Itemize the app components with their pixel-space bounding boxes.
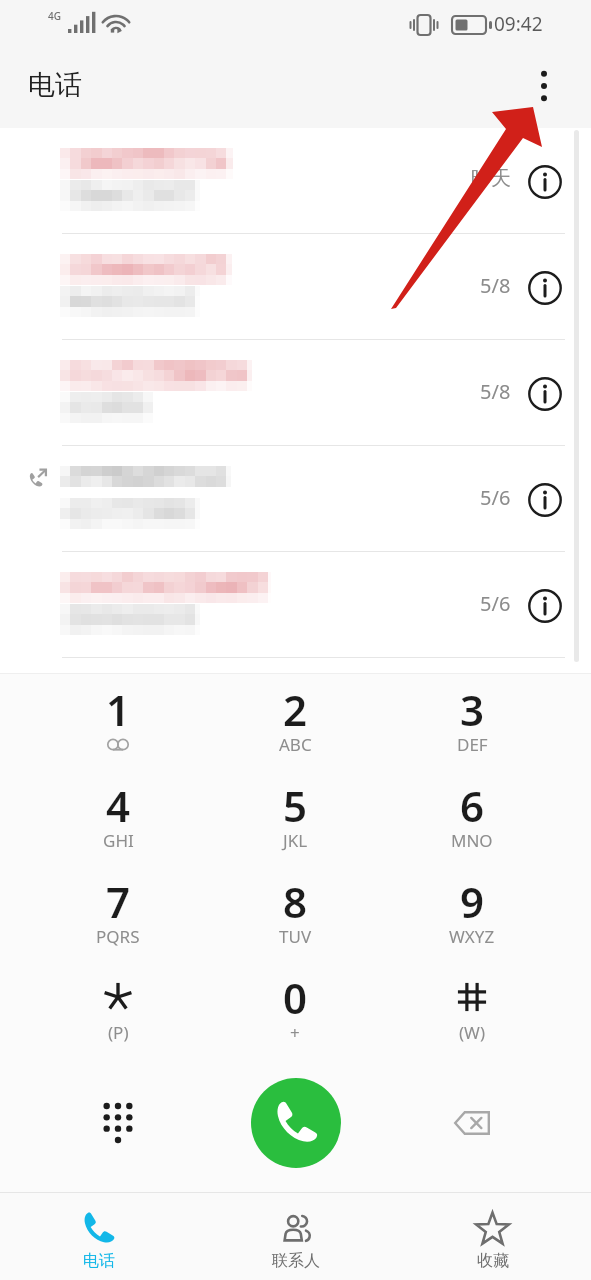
button[interactable]: 4 bbox=[30, 775, 206, 871]
button[interactable]: 7 bbox=[30, 871, 206, 967]
button[interactable]: Call details bbox=[527, 270, 563, 306]
button[interactable]: Call details bbox=[527, 588, 563, 624]
button[interactable]: 5 bbox=[207, 775, 383, 871]
button[interactable]: 8 bbox=[207, 871, 383, 967]
button[interactable]: 6 bbox=[384, 775, 560, 871]
staticText: 5/8 bbox=[480, 378, 511, 405]
staticText: PQRS bbox=[96, 925, 140, 948]
staticText: 9 bbox=[460, 873, 485, 930]
staticText: ABC bbox=[279, 733, 312, 756]
staticText: JKL bbox=[283, 829, 308, 852]
button[interactable]: 5/8 bbox=[0, 234, 591, 340]
staticText: 5/6 bbox=[480, 590, 511, 617]
staticText: 电话 bbox=[83, 1251, 115, 1271]
staticText: 5 bbox=[283, 777, 308, 834]
staticText: DEF bbox=[457, 733, 488, 756]
staticText: 7 bbox=[106, 873, 131, 930]
staticText: GHI bbox=[103, 829, 134, 852]
staticText: 6 bbox=[460, 777, 485, 834]
staticText: 5/6 bbox=[480, 484, 511, 511]
staticText: (W) bbox=[459, 1021, 486, 1044]
staticText: + bbox=[290, 1021, 300, 1044]
staticText: 3 bbox=[460, 681, 485, 738]
staticText: TUV bbox=[279, 925, 312, 948]
staticText: 昨天 bbox=[471, 166, 511, 191]
staticText: 收藏 bbox=[477, 1251, 509, 1271]
button[interactable]: 5/6 bbox=[0, 446, 591, 552]
button[interactable]: Call details bbox=[527, 376, 563, 412]
staticText: 5/8 bbox=[480, 272, 511, 299]
staticText: 0 bbox=[283, 969, 308, 1026]
button[interactable]: Call details bbox=[527, 164, 563, 200]
button[interactable]: (P) bbox=[30, 967, 206, 1063]
button[interactable]: Call bbox=[251, 1078, 341, 1168]
button[interactable]: Hide keypad bbox=[78, 1083, 158, 1163]
staticText: 电话 bbox=[28, 68, 82, 102]
button[interactable]: 电话 bbox=[0, 1193, 197, 1280]
button[interactable]: (W) bbox=[384, 967, 560, 1063]
button[interactable]: 2 bbox=[207, 679, 383, 775]
staticText: 09:42 bbox=[494, 11, 543, 37]
staticText: 1 bbox=[106, 681, 131, 738]
staticText: MNO bbox=[451, 829, 493, 852]
button[interactable]: 5/8 bbox=[0, 340, 591, 446]
staticText: 4 bbox=[106, 777, 131, 834]
button[interactable]: 5/6 bbox=[0, 552, 591, 658]
staticText: 8 bbox=[283, 873, 308, 930]
staticText: 4G bbox=[48, 9, 61, 23]
staticText: 2 bbox=[283, 681, 308, 738]
button[interactable]: Delete bbox=[432, 1083, 512, 1163]
button[interactable]: 9 bbox=[384, 871, 560, 967]
button[interactable]: 0 bbox=[207, 967, 383, 1063]
button[interactable]: 3 bbox=[384, 679, 560, 775]
button[interactable]: More options bbox=[516, 58, 572, 114]
button[interactable]: Call details bbox=[527, 482, 563, 518]
button[interactable]: 1 bbox=[30, 679, 206, 775]
button[interactable]: 收藏 bbox=[394, 1193, 591, 1280]
button[interactable]: 联系人 bbox=[197, 1193, 394, 1280]
staticText: (P) bbox=[108, 1021, 129, 1044]
staticText: 联系人 bbox=[272, 1251, 320, 1271]
button[interactable]: 昨天 bbox=[0, 128, 591, 234]
staticText: WXYZ bbox=[449, 925, 495, 948]
